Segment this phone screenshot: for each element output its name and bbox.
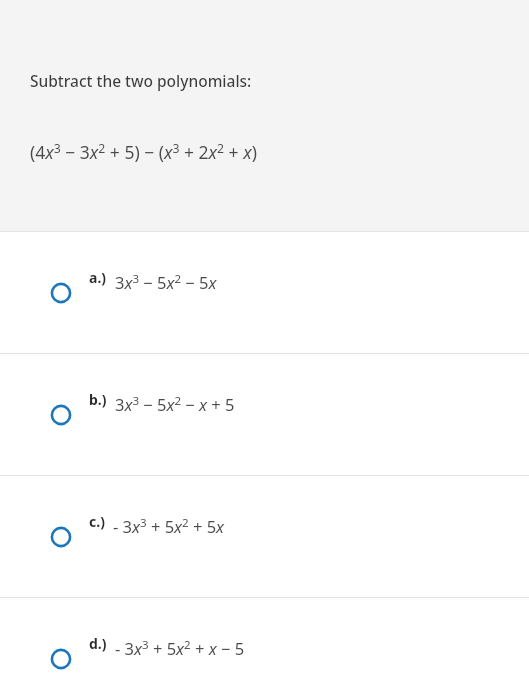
staticText: 3x3 − 5x2 − 5x (115, 271, 217, 293)
staticText: 3x3 − 5x2 − x + 5 (115, 393, 235, 415)
staticText: (4x3 − 3x2 + 5) − (x3 + 2x2 + x) (30, 140, 257, 164)
other: Select option d.) (50, 648, 72, 670)
staticText: c.) (89, 512, 105, 531)
button[interactable]: Select option a.) (0, 232, 529, 353)
other: Select option a.) (50, 282, 72, 304)
staticText: Subtract the two polynomials: (30, 70, 252, 91)
staticText: - 3x3 + 5x2 + 5x (113, 515, 225, 537)
other: Select option b.) (50, 404, 72, 426)
other: Select option c.) (50, 526, 72, 548)
button[interactable]: Select option d.) (0, 598, 529, 700)
staticText: b.) (89, 390, 107, 409)
button[interactable]: Select option c.) (0, 476, 529, 597)
button[interactable]: Select option b.) (0, 354, 529, 475)
staticText: d.) (89, 634, 107, 653)
staticText: - 3x3 + 5x2 + x − 5 (115, 637, 245, 659)
staticText: a.) (89, 268, 107, 287)
